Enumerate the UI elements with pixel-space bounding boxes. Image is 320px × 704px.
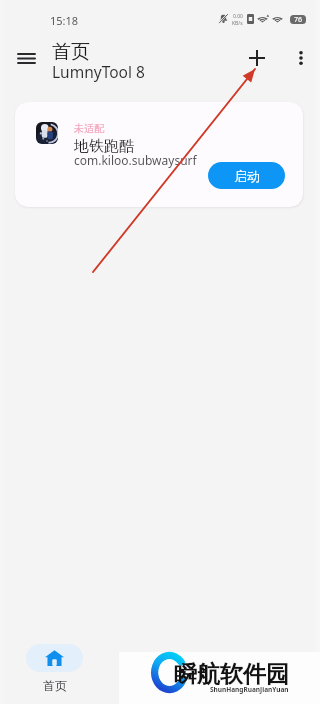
staticText: 0.00 (233, 13, 243, 20)
staticText: com.kiloo.subwaysurf (74, 152, 197, 168)
staticText: 首页 (52, 40, 90, 64)
staticText: 首页 (43, 678, 67, 693)
staticText: 启动 (234, 168, 260, 184)
button[interactable]: 首页 (26, 644, 83, 693)
button[interactable]: Menu (8, 40, 44, 76)
staticText: 76 (294, 15, 303, 24)
button[interactable]: Add (239, 40, 275, 76)
staticText: 未适配 (74, 122, 104, 135)
staticText: ShunHangRuanJianYuan (210, 685, 289, 694)
staticText: 15:18 (50, 13, 79, 28)
staticText: KB/s (232, 20, 243, 27)
button[interactable]: 启动 (208, 162, 285, 189)
button[interactable]: More options (283, 40, 319, 76)
button[interactable]: 未适配 (15, 102, 303, 207)
staticText: LumnyTool 8 (52, 61, 145, 82)
staticText: 瞬航软件园 (174, 660, 289, 689)
staticText: 地铁跑酷 (74, 137, 134, 156)
